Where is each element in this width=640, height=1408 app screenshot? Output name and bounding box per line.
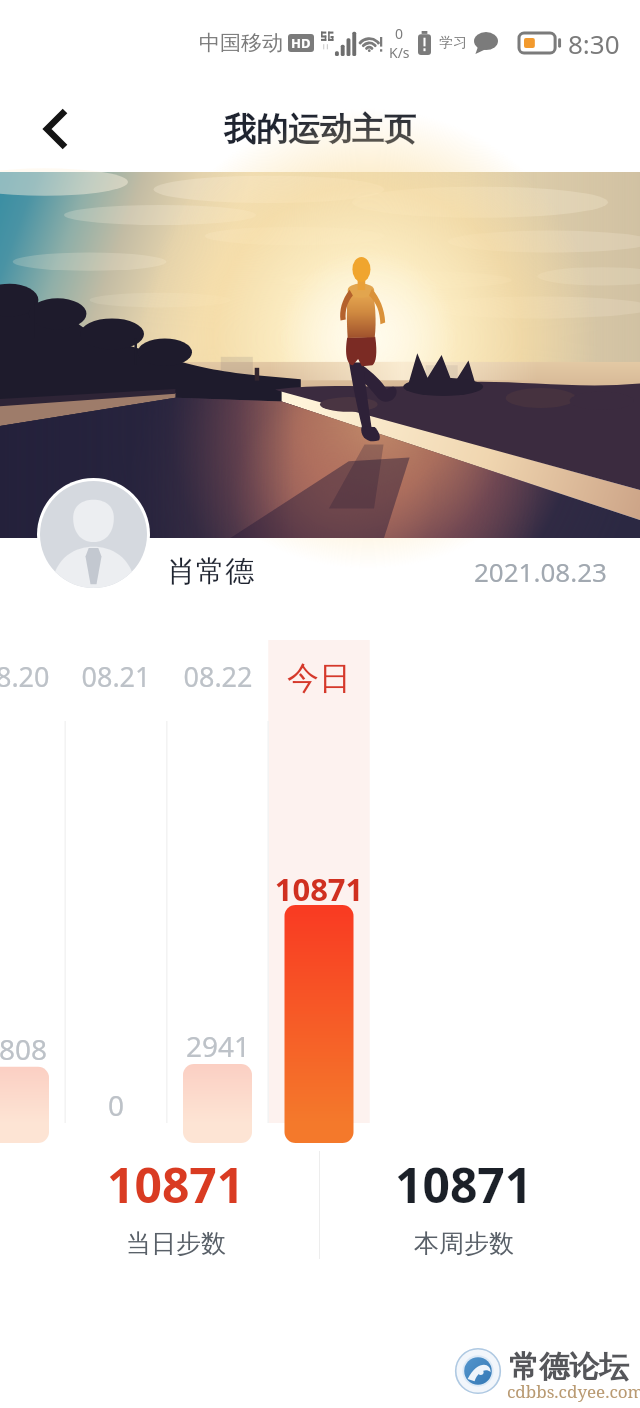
staticText: HD [291,34,311,52]
staticText: 常德论坛 [509,1348,629,1386]
button[interactable]: 08.22 [167,658,269,695]
staticText: 肖常德 [167,553,254,590]
staticText: 10871 [268,868,370,910]
button[interactable]: 10871 [320,1152,607,1259]
button[interactable]: 08.20 [0,658,66,695]
staticText: 2808 [0,1030,66,1068]
staticText: 中国移动 [199,30,283,56]
button[interactable]: 今日 [268,658,370,698]
staticText: 我的运动主页 [224,109,416,149]
button[interactable]: 10871 [33,1152,319,1259]
staticText: 当日步数 [126,1228,226,1259]
staticText: 10871 [395,1152,533,1217]
staticText: cdbbs.cdyee.com [507,1380,640,1403]
staticText: 本周步数 [414,1228,514,1259]
button[interactable]: Back [26,99,86,159]
button[interactable]: 08.21 [65,658,167,695]
staticText: 0 [65,1086,167,1124]
staticText: 10871 [107,1152,245,1217]
staticText: 0 [395,24,404,43]
staticText: 8:30 [568,26,620,61]
staticText: K/s [389,43,410,62]
staticText: 2021.08.23 [474,554,607,589]
button[interactable]: Profile avatar [40,481,147,588]
staticText: 2941 [167,1027,269,1065]
staticText: 学习 [439,34,467,52]
